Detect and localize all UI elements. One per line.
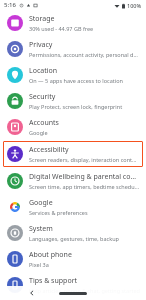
- button[interactable]: Accessibility: [3, 141, 143, 167]
- staticText: Storage: [29, 14, 55, 24]
- staticText: Google: [29, 129, 48, 136]
- staticText: Privacy: [29, 40, 53, 50]
- staticText: Screen time, app timers, bedtime schedul…: [29, 183, 140, 190]
- staticText: 30% used - 44.97 GB free: [29, 25, 94, 32]
- staticText: Languages, gestures, time, backup: [29, 235, 119, 242]
- staticText: On — 5 apps have access to location: [29, 77, 123, 84]
- staticText: Help articles, phone & chat, getting sta…: [29, 287, 140, 294]
- button[interactable]: Back: [26, 287, 38, 299]
- staticText: Accounts: [29, 118, 59, 128]
- button[interactable]: System: [0, 220, 146, 246]
- button[interactable]: About phone: [0, 246, 146, 272]
- staticText: Permissions, account activity, personal …: [29, 51, 140, 58]
- button[interactable]: Security: [0, 88, 146, 114]
- staticText: Play Protect, screen lock, fingerprint: [29, 103, 123, 110]
- button[interactable]: Privacy: [0, 36, 146, 62]
- staticText: Screen readers, display, interaction con…: [29, 156, 137, 163]
- staticText: About phone: [29, 250, 72, 260]
- staticText: 5:16: [4, 1, 16, 9]
- staticText: Digital Wellbeing & parental controls: [29, 172, 140, 182]
- staticText: Accessibility: [29, 145, 69, 155]
- staticText: System: [29, 224, 53, 234]
- button[interactable]: Digital Wellbeing & parental controls: [0, 168, 146, 194]
- staticText: Services & preferences: [29, 209, 88, 216]
- button[interactable]: Google: [0, 194, 146, 220]
- staticText: Security: [29, 92, 56, 102]
- button[interactable]: Home: [58, 289, 88, 298]
- staticText: Pixel 3a: [29, 261, 49, 268]
- button[interactable]: Storage: [0, 10, 146, 36]
- staticText: Location: [29, 66, 58, 76]
- button[interactable]: Tips & support: [0, 272, 146, 298]
- staticText: 100%: [127, 2, 142, 9]
- staticText: Google: [29, 198, 53, 208]
- staticText: Tips & support: [29, 276, 78, 286]
- button[interactable]: Location: [0, 62, 146, 88]
- button[interactable]: Accounts: [0, 114, 146, 140]
